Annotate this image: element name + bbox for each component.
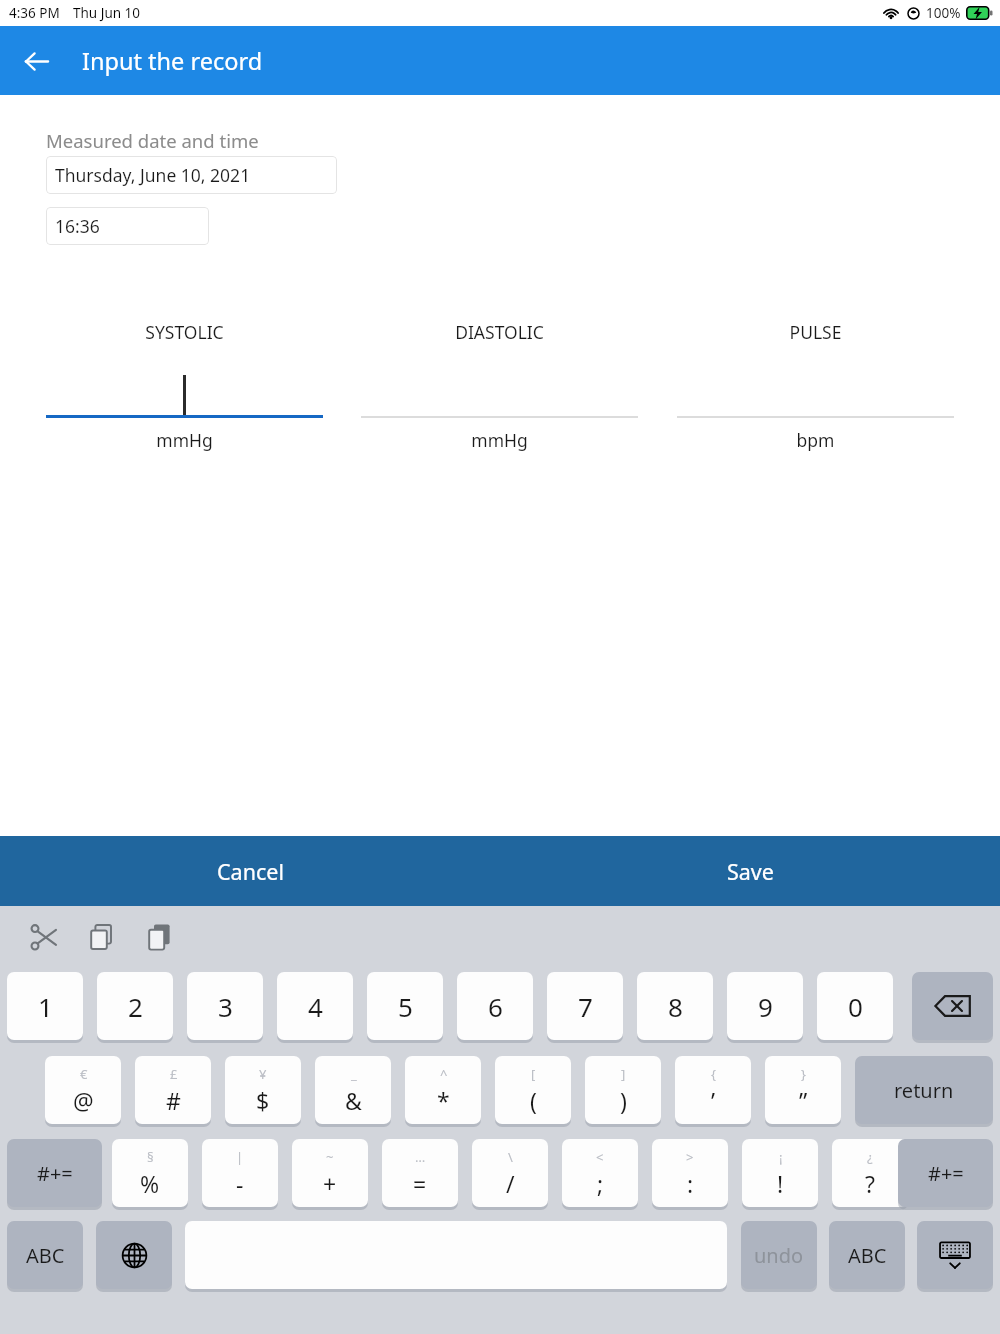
staticText: ] <box>621 1065 626 1083</box>
staticText: 6 <box>488 989 503 1024</box>
button[interactable]: ^ <box>405 1056 481 1124</box>
staticText: ( <box>530 1085 537 1116</box>
button[interactable]: € <box>45 1056 121 1124</box>
button[interactable]: ¿ <box>832 1139 908 1207</box>
staticText: 4:36 PM <box>9 4 60 22</box>
button[interactable]: Back <box>13 38 59 84</box>
staticText: undo <box>754 1242 804 1269</box>
button[interactable]: #+= <box>898 1139 993 1207</box>
staticText: Measured date and time <box>46 128 259 153</box>
staticText: { <box>711 1065 716 1083</box>
staticText: Thu Jun 10 <box>73 4 141 22</box>
staticText: & <box>345 1085 362 1116</box>
staticText: > <box>686 1148 694 1166</box>
button[interactable]: 3 <box>187 972 263 1040</box>
button[interactable]: ABC <box>829 1221 905 1289</box>
button[interactable] <box>677 349 954 418</box>
staticText: ~ <box>326 1148 334 1166</box>
staticText: Save <box>727 857 774 886</box>
staticText: #+= <box>928 1160 964 1187</box>
button[interactable]: Save <box>650 836 850 906</box>
staticText: [ <box>531 1065 536 1083</box>
button[interactable] <box>361 349 638 418</box>
button[interactable] <box>46 349 323 418</box>
button[interactable]: { <box>675 1056 751 1124</box>
staticText: SYSTOLIC <box>46 320 323 344</box>
button[interactable]: ABC <box>7 1221 83 1289</box>
button[interactable]: | <box>202 1139 278 1207</box>
staticText: 4 <box>308 989 323 1024</box>
staticText: ¥ <box>259 1065 267 1083</box>
button[interactable]: … <box>382 1139 458 1207</box>
staticText: $ <box>256 1085 270 1116</box>
staticText: ’ <box>711 1085 716 1116</box>
button[interactable]: #+= <box>7 1139 102 1207</box>
button[interactable]: 2 <box>97 972 173 1040</box>
staticText: ” <box>799 1085 808 1116</box>
staticText: ¡ <box>779 1148 783 1166</box>
staticText: ; <box>597 1168 604 1199</box>
button[interactable]: Hide keyboard <box>917 1221 993 1289</box>
staticText: return <box>894 1077 954 1104</box>
staticText: £ <box>170 1065 178 1083</box>
button[interactable]: Change keyboard <box>96 1221 172 1289</box>
button[interactable]: 9 <box>727 972 803 1040</box>
button[interactable]: [ <box>495 1056 571 1124</box>
staticText: @ <box>73 1085 94 1116</box>
staticText: | <box>236 1148 244 1166</box>
button[interactable]: undo <box>741 1221 817 1289</box>
button[interactable]: > <box>652 1139 728 1207</box>
staticText: DIASTOLIC <box>361 320 638 344</box>
button[interactable]: 5 <box>367 972 443 1040</box>
button[interactable]: £ <box>135 1056 211 1124</box>
button[interactable]: < <box>562 1139 638 1207</box>
button[interactable]: 6 <box>457 972 533 1040</box>
button[interactable]: 0 <box>817 972 893 1040</box>
staticText: < <box>596 1148 604 1166</box>
staticText: # <box>166 1085 181 1116</box>
button[interactable]: ~ <box>292 1139 368 1207</box>
staticText: mmHg <box>361 428 638 452</box>
staticText: € <box>80 1065 88 1083</box>
staticText: - <box>236 1168 244 1199</box>
button[interactable]: ¡ <box>742 1139 818 1207</box>
button[interactable]: Copy <box>78 913 126 961</box>
staticText: 2 <box>128 989 143 1024</box>
button[interactable]: } <box>765 1056 841 1124</box>
button[interactable]: return <box>855 1056 993 1124</box>
staticText: 100% <box>926 4 961 22</box>
button[interactable]: 16:36 <box>46 207 209 245</box>
button[interactable]: 8 <box>637 972 713 1040</box>
button[interactable]: 7 <box>547 972 623 1040</box>
button[interactable]: Cancel <box>150 836 350 906</box>
button[interactable]: ] <box>585 1056 661 1124</box>
staticText: 16:36 <box>55 214 100 238</box>
staticText: ¿ <box>867 1148 873 1166</box>
staticText: 3 <box>218 989 233 1024</box>
button[interactable]: Cut <box>20 913 68 961</box>
button[interactable]: Paste <box>136 913 184 961</box>
staticText: 8 <box>668 989 683 1024</box>
button[interactable]: 1 <box>7 972 83 1040</box>
staticText: ABC <box>848 1242 887 1269</box>
staticText: 5 <box>398 989 413 1024</box>
staticText: Thursday, June 10, 2021 <box>55 163 251 187</box>
staticText: + <box>323 1168 337 1199</box>
staticText: #+= <box>37 1160 73 1187</box>
button[interactable]: ¥ <box>225 1056 301 1124</box>
staticText: * <box>437 1085 450 1116</box>
staticText: = <box>413 1168 427 1199</box>
staticText: … <box>415 1148 426 1166</box>
button[interactable]: 4 <box>277 972 353 1040</box>
staticText: 7 <box>578 989 593 1024</box>
button[interactable]: § <box>112 1139 188 1207</box>
button[interactable]: Thursday, June 10, 2021 <box>46 156 337 194</box>
staticText: ? <box>865 1168 875 1199</box>
staticText: } <box>801 1065 806 1083</box>
button[interactable]: _ <box>315 1056 391 1124</box>
staticText: Cancel <box>217 857 284 886</box>
button[interactable]: Backspace <box>912 972 993 1040</box>
staticText: ) <box>620 1085 627 1116</box>
button[interactable]: \ <box>472 1139 548 1207</box>
